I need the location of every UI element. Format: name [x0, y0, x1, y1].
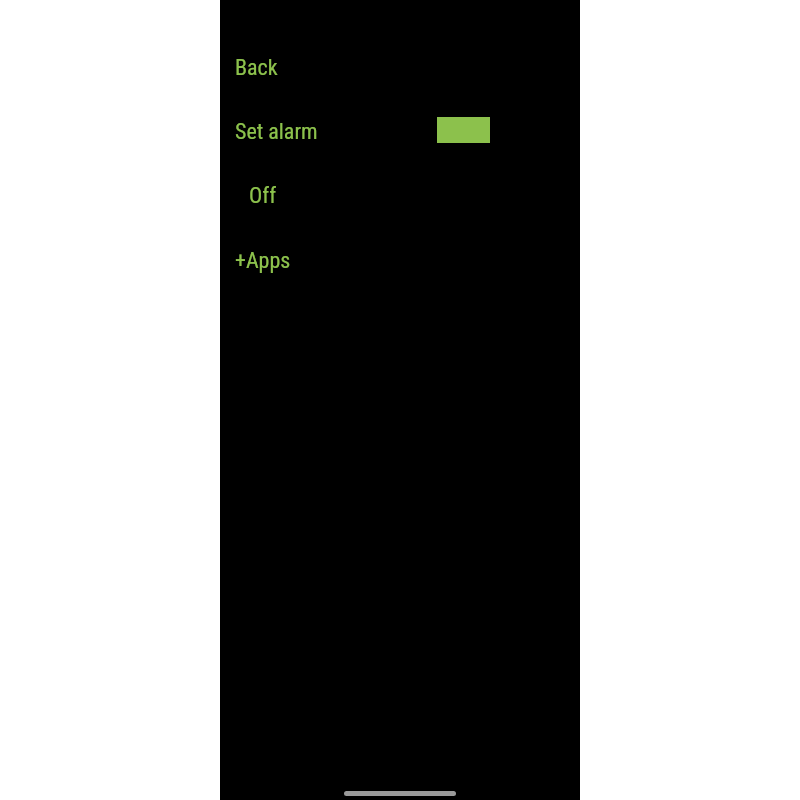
staticText: Set alarm: [235, 119, 318, 145]
staticText: +Apps: [235, 248, 291, 274]
button[interactable]: Off: [249, 183, 277, 209]
button[interactable]: Set alarm: [235, 119, 318, 145]
staticText: Off: [249, 183, 277, 209]
button[interactable]: Back: [235, 55, 278, 81]
button[interactable]: +Apps: [235, 248, 291, 274]
staticText: Back: [235, 55, 278, 81]
